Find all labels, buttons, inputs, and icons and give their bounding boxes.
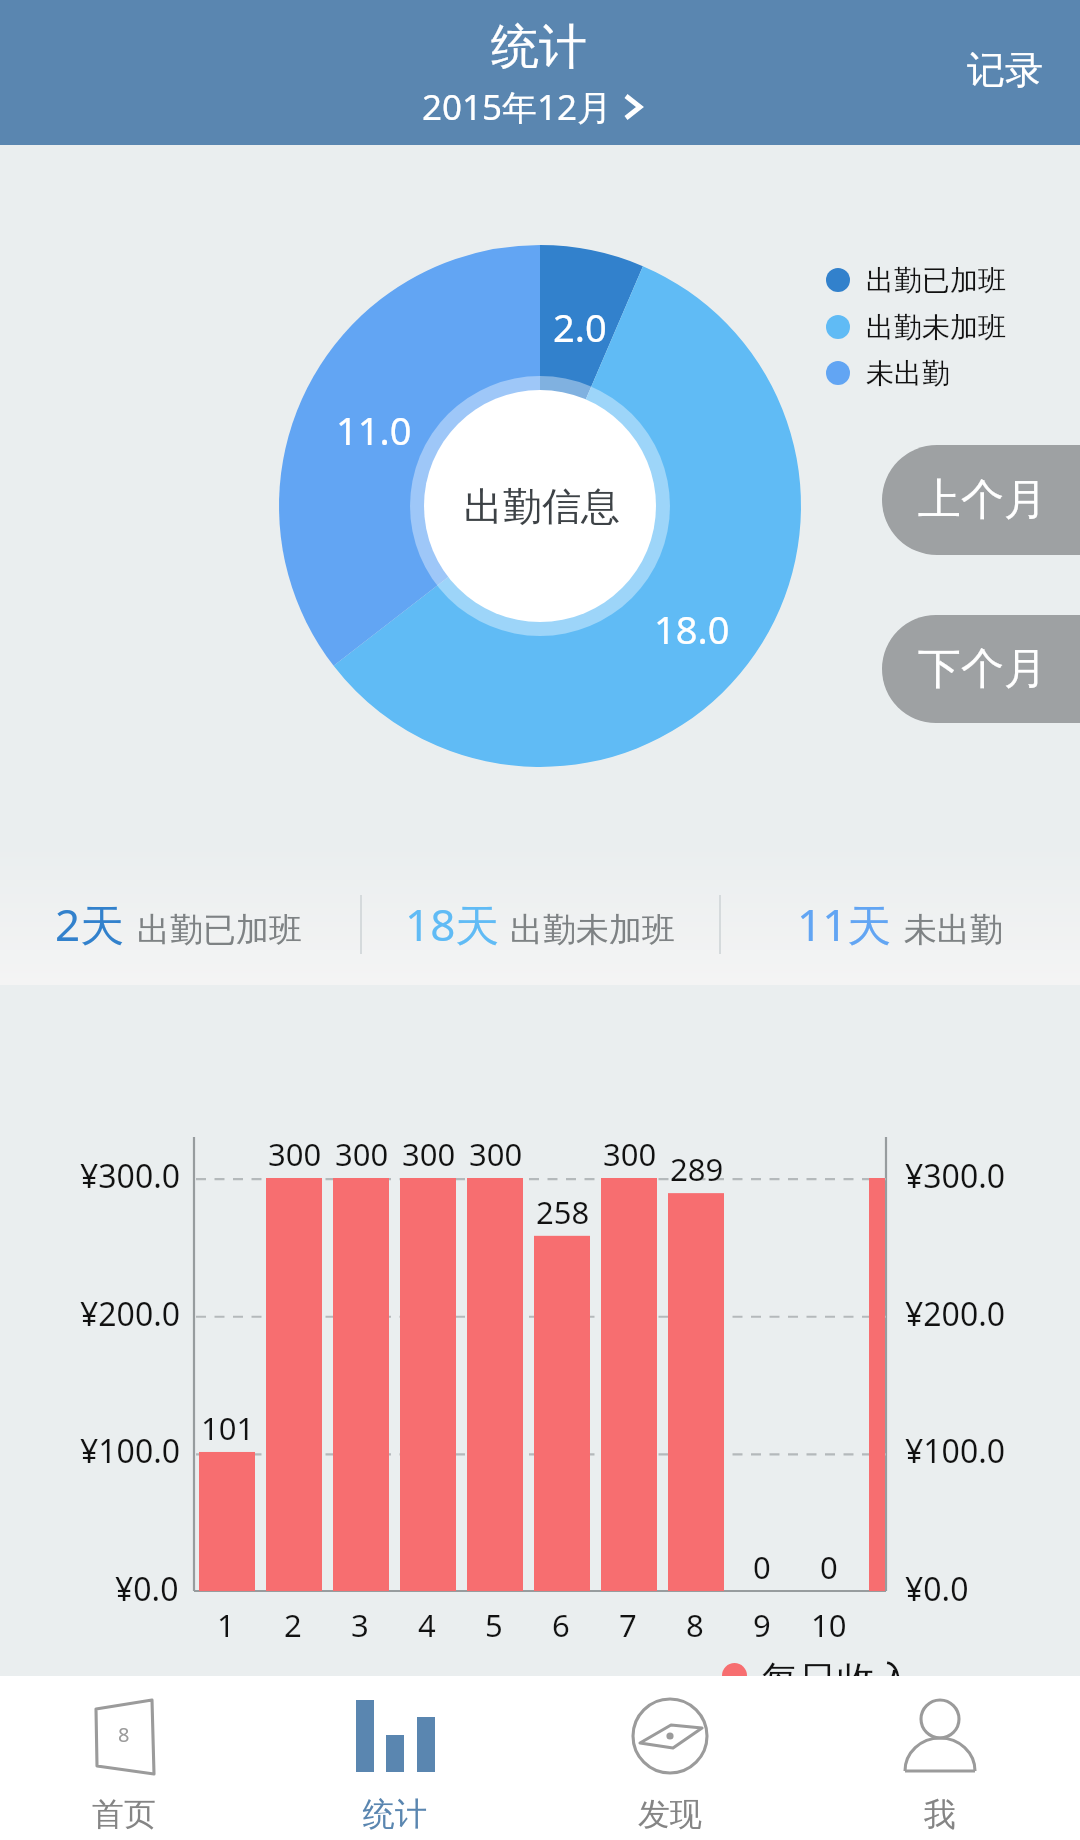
staticText: 7 <box>619 1604 637 1646</box>
button[interactable]: 18天 <box>385 888 689 960</box>
staticText: 6 <box>552 1604 570 1646</box>
button[interactable]: 出勤已加班 <box>818 256 1028 304</box>
button[interactable]: 记录 <box>940 20 1070 125</box>
button[interactable]: 出勤未加班 <box>818 303 1028 351</box>
staticText: 101 <box>201 1407 255 1449</box>
button[interactable]: 未出勤 <box>818 349 1028 397</box>
staticText: 出勤已加班 <box>137 909 302 951</box>
staticText: 8 <box>118 1721 130 1748</box>
button[interactable]: 首页 <box>0 1676 270 1840</box>
staticText: 出勤信息 <box>464 482 620 531</box>
staticText: 18天 <box>405 894 500 954</box>
staticText: 300 <box>603 1133 657 1175</box>
staticText: 2.0 <box>553 301 607 353</box>
staticText: ¥200.0 <box>905 1292 1006 1336</box>
staticText: 18.0 <box>654 603 730 655</box>
staticText: ¥300.0 <box>905 1154 1006 1198</box>
staticText: 记录 <box>967 46 1043 94</box>
staticText: 10 <box>811 1604 847 1646</box>
staticText: 出勤未加班 <box>510 909 675 951</box>
staticText: 出勤已加班 <box>866 263 1006 298</box>
staticText: 首页 <box>92 1794 156 1834</box>
staticText: ¥200.0 <box>80 1292 181 1336</box>
button[interactable]: 选择月份 2015年12月 <box>404 80 664 132</box>
staticText: 2015年12月 <box>422 83 613 131</box>
staticText: 300 <box>469 1133 523 1175</box>
staticText: 我 <box>924 1794 956 1834</box>
staticText: 300 <box>268 1133 322 1175</box>
staticText: 3 <box>351 1604 369 1646</box>
button[interactable]: 我 <box>810 1676 1080 1840</box>
staticText: ¥0.0 <box>905 1567 969 1611</box>
staticText: ¥0.0 <box>115 1567 179 1611</box>
staticText: 300 <box>402 1133 456 1175</box>
staticText: 300 <box>335 1133 389 1175</box>
staticText: 1 <box>217 1604 235 1646</box>
button[interactable]: 2天 <box>35 888 316 960</box>
staticText: 2天 <box>55 894 125 954</box>
staticText: 2 <box>284 1604 302 1646</box>
staticText: 11.0 <box>336 404 412 456</box>
staticText: ¥100.0 <box>80 1429 181 1473</box>
staticText: 未出勤 <box>866 356 950 391</box>
staticText: 11天 <box>797 894 892 954</box>
staticText: 289 <box>670 1148 724 1190</box>
button[interactable]: 发现 <box>540 1676 810 1840</box>
staticText: ¥100.0 <box>905 1429 1006 1473</box>
button[interactable]: 统计 <box>270 1676 540 1840</box>
staticText: 未出勤 <box>904 909 1003 951</box>
staticText: 4 <box>418 1604 436 1646</box>
staticText: 258 <box>536 1191 590 1233</box>
button[interactable]: 下个月 <box>882 615 1080 723</box>
staticText: 9 <box>753 1604 771 1646</box>
staticText: 0 <box>820 1546 838 1588</box>
staticText: 统计 <box>491 17 587 77</box>
button[interactable]: 11天 <box>777 888 1017 960</box>
staticText: ¥300.0 <box>80 1154 181 1198</box>
staticText: 统计 <box>363 1794 427 1834</box>
button[interactable]: 上个月 <box>882 445 1080 555</box>
staticText: 8 <box>686 1604 704 1646</box>
staticText: 0 <box>753 1546 771 1588</box>
staticText: 上个月 <box>918 473 1047 527</box>
staticText: 出勤未加班 <box>866 310 1006 345</box>
staticText: 每日收入 <box>761 1656 913 1704</box>
staticText: 发现 <box>638 1794 702 1834</box>
staticText: 5 <box>485 1604 503 1646</box>
staticText: 下个月 <box>918 642 1047 696</box>
